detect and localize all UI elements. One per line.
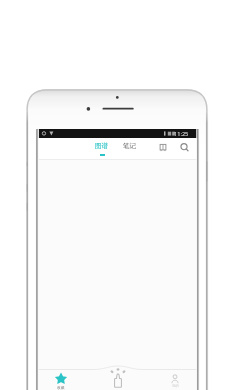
button[interactable]: Notebook xyxy=(155,138,171,160)
button[interactable]: Search xyxy=(176,138,192,160)
staticText: 笔记 xyxy=(123,142,137,150)
button[interactable]: 笔记 xyxy=(119,138,141,160)
staticText: 收藏 xyxy=(57,385,65,390)
button[interactable]: Add record xyxy=(107,369,129,390)
staticText: 图谱 xyxy=(95,142,109,150)
staticText: 11:25 xyxy=(174,130,189,138)
staticText: 我的 xyxy=(172,384,179,388)
button[interactable]: Profile xyxy=(164,369,186,390)
button[interactable]: 图谱 xyxy=(91,138,113,160)
button[interactable]: Favorites xyxy=(50,369,72,390)
